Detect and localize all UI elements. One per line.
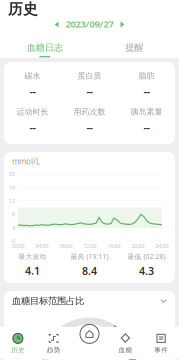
staticText: 胰岛素量 [130, 107, 162, 117]
staticText: mmol/L [12, 156, 40, 167]
staticText: 趋势 [47, 346, 61, 354]
staticText: 最大波动 [18, 252, 46, 260]
staticText: -- [143, 85, 149, 99]
staticText: 提醒 [125, 42, 143, 53]
staticText: 20 [9, 170, 15, 178]
staticText: -- [29, 85, 35, 99]
staticText: 事件 [154, 346, 168, 354]
staticText: 8 [12, 211, 15, 218]
staticText: 08:00 [59, 242, 72, 250]
staticText: 历史 [11, 346, 25, 354]
staticText: 血糖 [118, 346, 132, 354]
button[interactable]: 事件 [143, 333, 179, 354]
staticText: -- [86, 121, 92, 135]
staticText: 8.4 [82, 264, 97, 278]
staticText: 脂肪 [138, 71, 154, 81]
staticText: 16:00 [107, 242, 120, 250]
staticText: 运动时长 [16, 107, 48, 117]
staticText: 0 [12, 237, 15, 245]
staticText: 2023/09/27 [65, 18, 113, 30]
staticText: 最高 (19:11) [70, 252, 108, 261]
button[interactable]: Previous day [53, 19, 60, 28]
staticText: 16 [9, 184, 15, 191]
staticText: 20:00 [131, 242, 144, 250]
staticText: 24:00 [155, 242, 168, 250]
staticText: -- [143, 121, 149, 135]
staticText: 12:00 [83, 242, 96, 250]
button[interactable]: 首页 [78, 323, 100, 345]
staticText: 碳水 [24, 71, 40, 81]
staticText: 血糖日志 [27, 42, 63, 53]
button[interactable]: 历史 [0, 333, 36, 354]
staticText: 04:00 [35, 242, 48, 250]
staticText: 用药次数 [73, 107, 105, 117]
staticText: 4 [12, 224, 15, 231]
staticText: -- [29, 121, 35, 135]
button[interactable]: 提醒 [89, 30, 179, 55]
staticText: 12 [9, 197, 15, 204]
staticText: 最低 (02:28) [127, 252, 165, 261]
staticText: 血糖目标范围占比 [12, 295, 84, 307]
staticText: 4.3 [139, 264, 154, 278]
staticText: 00:00 [11, 242, 24, 250]
staticText: 4.1 [25, 263, 40, 278]
staticText: 历史 [8, 0, 38, 18]
button[interactable]: Next day [118, 19, 125, 28]
button[interactable]: 血糖日志 [0, 30, 89, 55]
button[interactable]: 趋势 [36, 333, 72, 354]
staticText: -- [86, 85, 92, 99]
button[interactable]: 血糖目标范围占比 [4, 291, 175, 311]
button[interactable]: 血糖 [107, 333, 143, 354]
staticText: 蛋白质 [77, 71, 101, 81]
